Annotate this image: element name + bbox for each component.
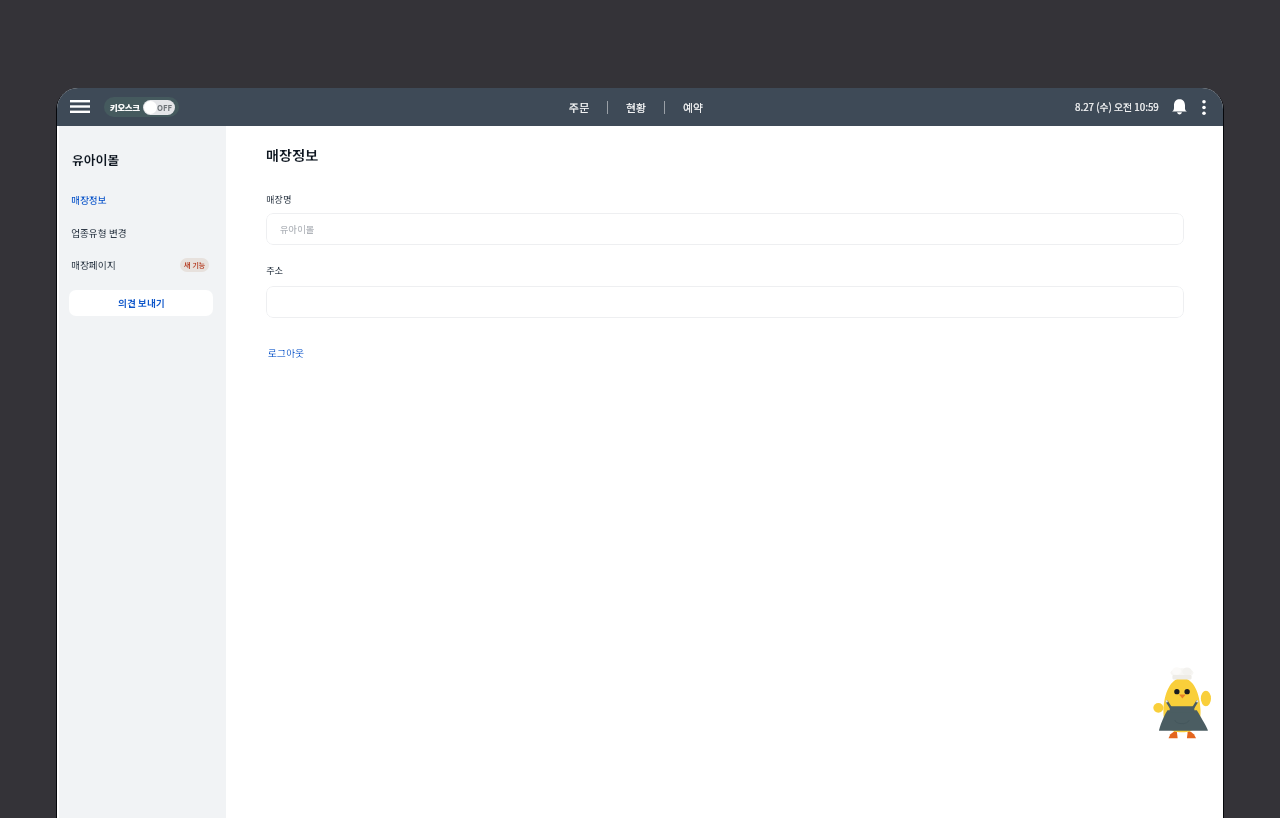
staticText: 키오스크 bbox=[110, 101, 141, 113]
staticText: 새 기능 bbox=[184, 260, 206, 270]
button[interactable]: Menu bbox=[66, 93, 93, 120]
staticText: 매장페이지 bbox=[71, 258, 116, 272]
button[interactable]: 키오스크 bbox=[104, 97, 179, 117]
staticText: 주소 bbox=[266, 263, 283, 276]
staticText: 유아이볼 bbox=[280, 222, 315, 235]
button[interactable]: 의견 보내기 bbox=[69, 290, 213, 316]
button[interactable] bbox=[266, 286, 1184, 318]
button[interactable]: 예약 bbox=[683, 92, 703, 122]
staticText: 로그아웃 bbox=[268, 346, 305, 360]
button[interactable]: More options bbox=[1193, 96, 1215, 118]
staticText: 매장정보 bbox=[71, 193, 107, 207]
staticText: OFF bbox=[157, 102, 173, 113]
button[interactable]: 유아이볼 bbox=[266, 213, 1184, 245]
button[interactable]: Notifications bbox=[1168, 96, 1190, 118]
staticText: 유아이볼 bbox=[72, 150, 120, 169]
staticText: 예약 bbox=[683, 99, 703, 115]
button[interactable]: 업종유형 변경 bbox=[57, 223, 226, 243]
button[interactable]: 매장정보 bbox=[57, 190, 226, 210]
staticText: 주문 bbox=[569, 99, 589, 115]
button[interactable]: 주문 bbox=[569, 92, 589, 122]
staticText: 8.27 (수) 오전 10:59 bbox=[1075, 100, 1159, 114]
button[interactable]: 로그아웃 bbox=[266, 344, 307, 362]
button[interactable]: 현황 bbox=[626, 92, 646, 122]
staticText: 매장명 bbox=[266, 192, 292, 205]
button[interactable]: 매장페이지 bbox=[57, 254, 226, 276]
staticText: 의견 보내기 bbox=[118, 296, 165, 310]
staticText: 매장정보 bbox=[266, 145, 318, 165]
staticText: 업종유형 변경 bbox=[71, 226, 127, 240]
staticText: 현황 bbox=[626, 99, 646, 115]
